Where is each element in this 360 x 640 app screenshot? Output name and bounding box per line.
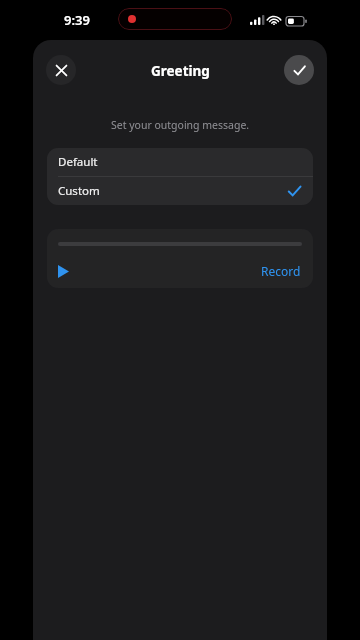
button[interactable]: Default bbox=[47, 148, 313, 176]
staticText: Custom bbox=[58, 183, 100, 199]
button[interactable]: Close bbox=[46, 55, 76, 85]
staticText: 9:39 bbox=[64, 11, 90, 29]
button[interactable]: Confirm bbox=[284, 55, 314, 85]
button[interactable]: Record bbox=[261, 263, 301, 279]
staticText: Record bbox=[261, 263, 301, 279]
staticText: Set your outgoing message. bbox=[111, 118, 250, 132]
staticText: Default bbox=[58, 154, 98, 170]
button[interactable]: Play bbox=[58, 261, 78, 281]
button[interactable]: Custom bbox=[47, 177, 313, 205]
staticText: Greeting bbox=[151, 62, 210, 80]
